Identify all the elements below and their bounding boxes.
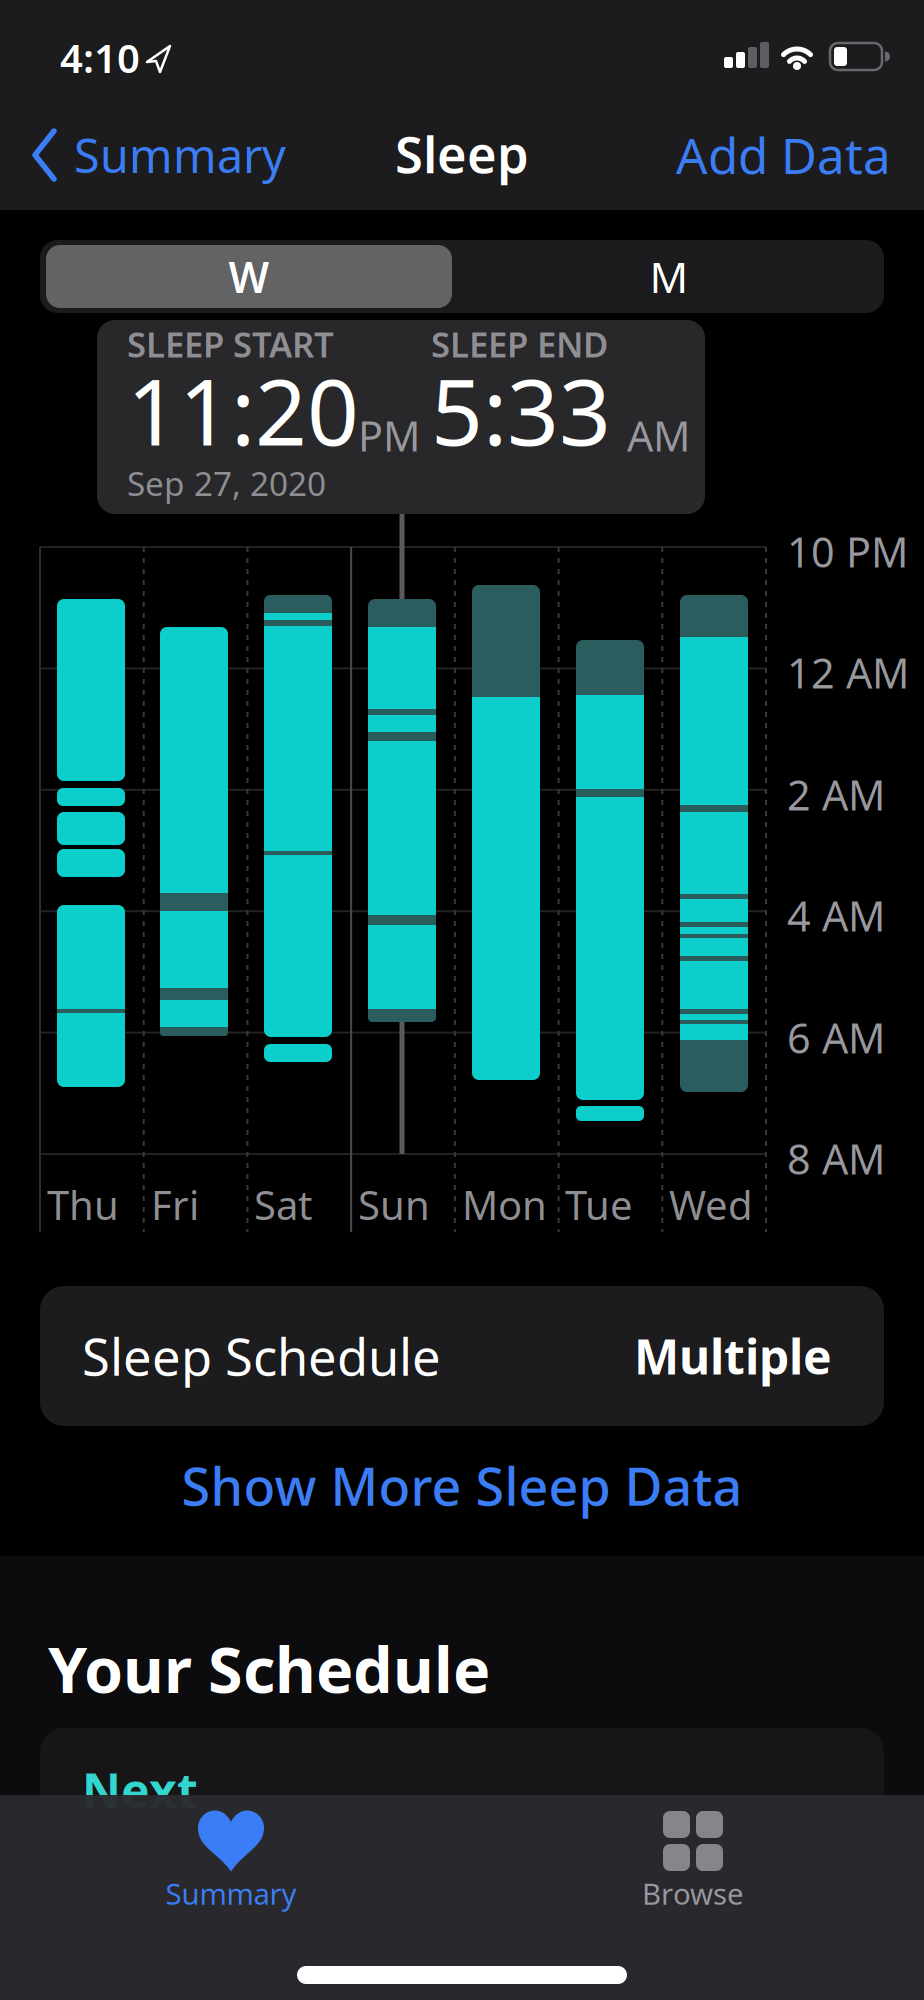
staticText: 4:10 <box>60 31 140 84</box>
staticText: 12 AM <box>787 645 909 700</box>
staticText: Summary <box>165 1874 296 1913</box>
button[interactable]: W <box>46 245 452 308</box>
staticText: Sleep Schedule <box>82 1322 441 1390</box>
staticText: Sun <box>358 1178 430 1231</box>
staticText: Mon <box>462 1178 547 1231</box>
staticText: Summary <box>74 124 286 186</box>
staticText: AM <box>627 408 690 463</box>
staticText: Your Schedule <box>48 1627 490 1710</box>
staticText: 11:20 <box>127 350 359 470</box>
button[interactable]: Show More Sleep Data <box>181 1451 742 1520</box>
staticText: Fri <box>151 1178 199 1231</box>
staticText: SLEEP START <box>127 321 334 367</box>
staticText: PM <box>358 408 420 463</box>
staticText: M <box>649 248 688 305</box>
staticText: Sleep <box>395 120 529 187</box>
staticText: Show More Sleep Data <box>181 1451 742 1520</box>
staticText: Next <box>82 1758 198 1822</box>
button[interactable]: Sleep Schedule <box>40 1286 884 1426</box>
button[interactable]: Add Data <box>676 122 891 187</box>
button[interactable]: M <box>466 245 872 308</box>
staticText: Browse <box>642 1874 744 1913</box>
staticText: W <box>228 248 269 305</box>
staticText: 8 AM <box>787 1131 885 1186</box>
staticText: Tue <box>565 1178 633 1231</box>
staticText: SLEEP END <box>431 321 608 367</box>
staticText: Sat <box>254 1178 312 1231</box>
staticText: Add Data <box>676 122 891 187</box>
staticText: 5:33 <box>431 350 611 470</box>
staticText: Thu <box>47 1178 119 1231</box>
staticText: Sep 27, 2020 <box>127 461 326 505</box>
staticText: 2 AM <box>787 767 885 822</box>
staticText: 4 AM <box>787 888 885 943</box>
staticText: Wed <box>669 1178 753 1231</box>
staticText: 10 PM <box>787 524 908 579</box>
button[interactable]: Summary <box>131 1810 331 1913</box>
button[interactable]: Browse <box>593 1810 793 1913</box>
button[interactable]: Back to Summary <box>32 124 286 186</box>
staticText: Multiple <box>634 1324 832 1388</box>
staticText: 6 AM <box>787 1010 885 1065</box>
